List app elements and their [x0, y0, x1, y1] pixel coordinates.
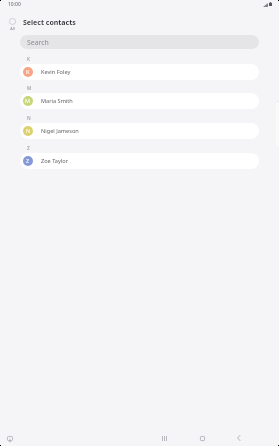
- button[interactable]: Home: [195, 431, 209, 445]
- staticText: Zoe Taylor: [41, 157, 68, 165]
- staticText: Search: [27, 38, 49, 47]
- button[interactable]: K: [20, 64, 259, 80]
- button[interactable]: M: [20, 93, 259, 109]
- staticText: Nigel Jameson: [41, 127, 79, 135]
- button[interactable]: Search: [20, 35, 259, 49]
- staticText: N: [27, 115, 31, 122]
- staticText: M: [25, 97, 31, 105]
- button[interactable]: Recent apps: [157, 431, 171, 445]
- staticText: All: [10, 26, 15, 31]
- staticText: Z: [27, 145, 30, 152]
- staticText: N: [26, 127, 31, 135]
- button[interactable]: Show keyboard: [3, 432, 17, 446]
- staticText: Select contacts: [23, 18, 76, 28]
- button[interactable]: Back: [231, 431, 245, 445]
- button[interactable]: Select all: [6, 18, 19, 31]
- staticText: Kevin Foley: [41, 68, 71, 76]
- staticText: Z: [26, 157, 30, 165]
- staticText: M: [27, 85, 32, 92]
- button[interactable]: N: [20, 123, 259, 139]
- staticText: 10:00: [8, 1, 21, 8]
- staticText: K: [27, 56, 30, 63]
- staticText: K: [26, 68, 30, 76]
- button[interactable]: Z: [20, 153, 259, 169]
- staticText: Maria Smith: [41, 97, 73, 105]
